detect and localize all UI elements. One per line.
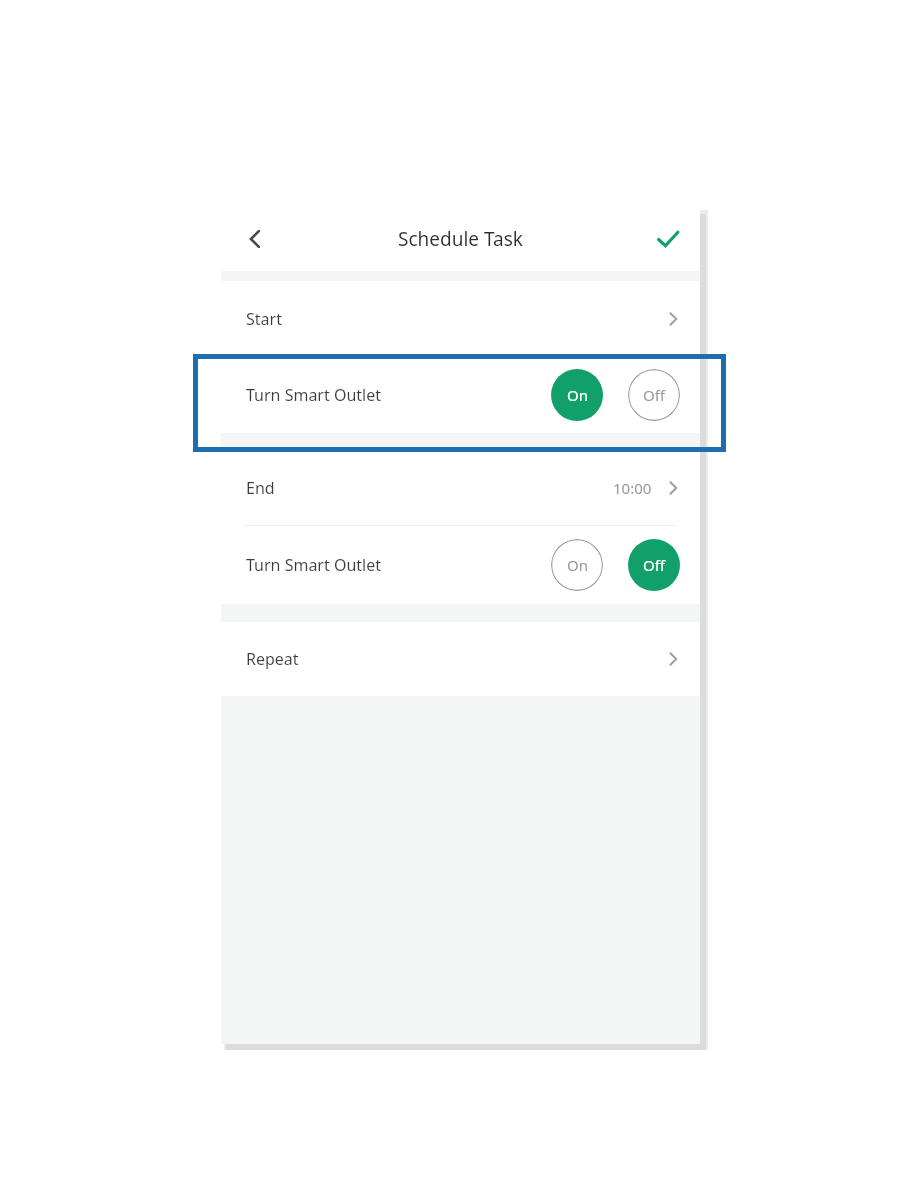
staticText: On — [567, 385, 588, 405]
staticText: Repeat — [246, 648, 299, 670]
button[interactable]: End — [221, 451, 700, 525]
staticText: Schedule Task — [398, 226, 523, 252]
button[interactable]: Repeat — [221, 622, 700, 696]
staticText: Off — [643, 385, 666, 405]
staticText: On — [567, 555, 588, 575]
staticText: End — [246, 477, 275, 499]
staticText: Start — [246, 308, 282, 330]
staticText: Off — [643, 555, 666, 575]
staticText: Turn Smart Outlet — [246, 554, 381, 576]
button[interactable]: On — [551, 539, 603, 591]
button[interactable]: Off — [628, 369, 680, 421]
button[interactable]: Start — [221, 281, 700, 356]
button[interactable]: Back — [229, 213, 281, 265]
button[interactable]: Confirm — [642, 213, 694, 265]
button[interactable]: On — [551, 369, 603, 421]
button[interactable]: Off — [628, 539, 680, 591]
staticText: Turn Smart Outlet — [246, 384, 381, 406]
staticText: 10:00 — [613, 478, 652, 498]
